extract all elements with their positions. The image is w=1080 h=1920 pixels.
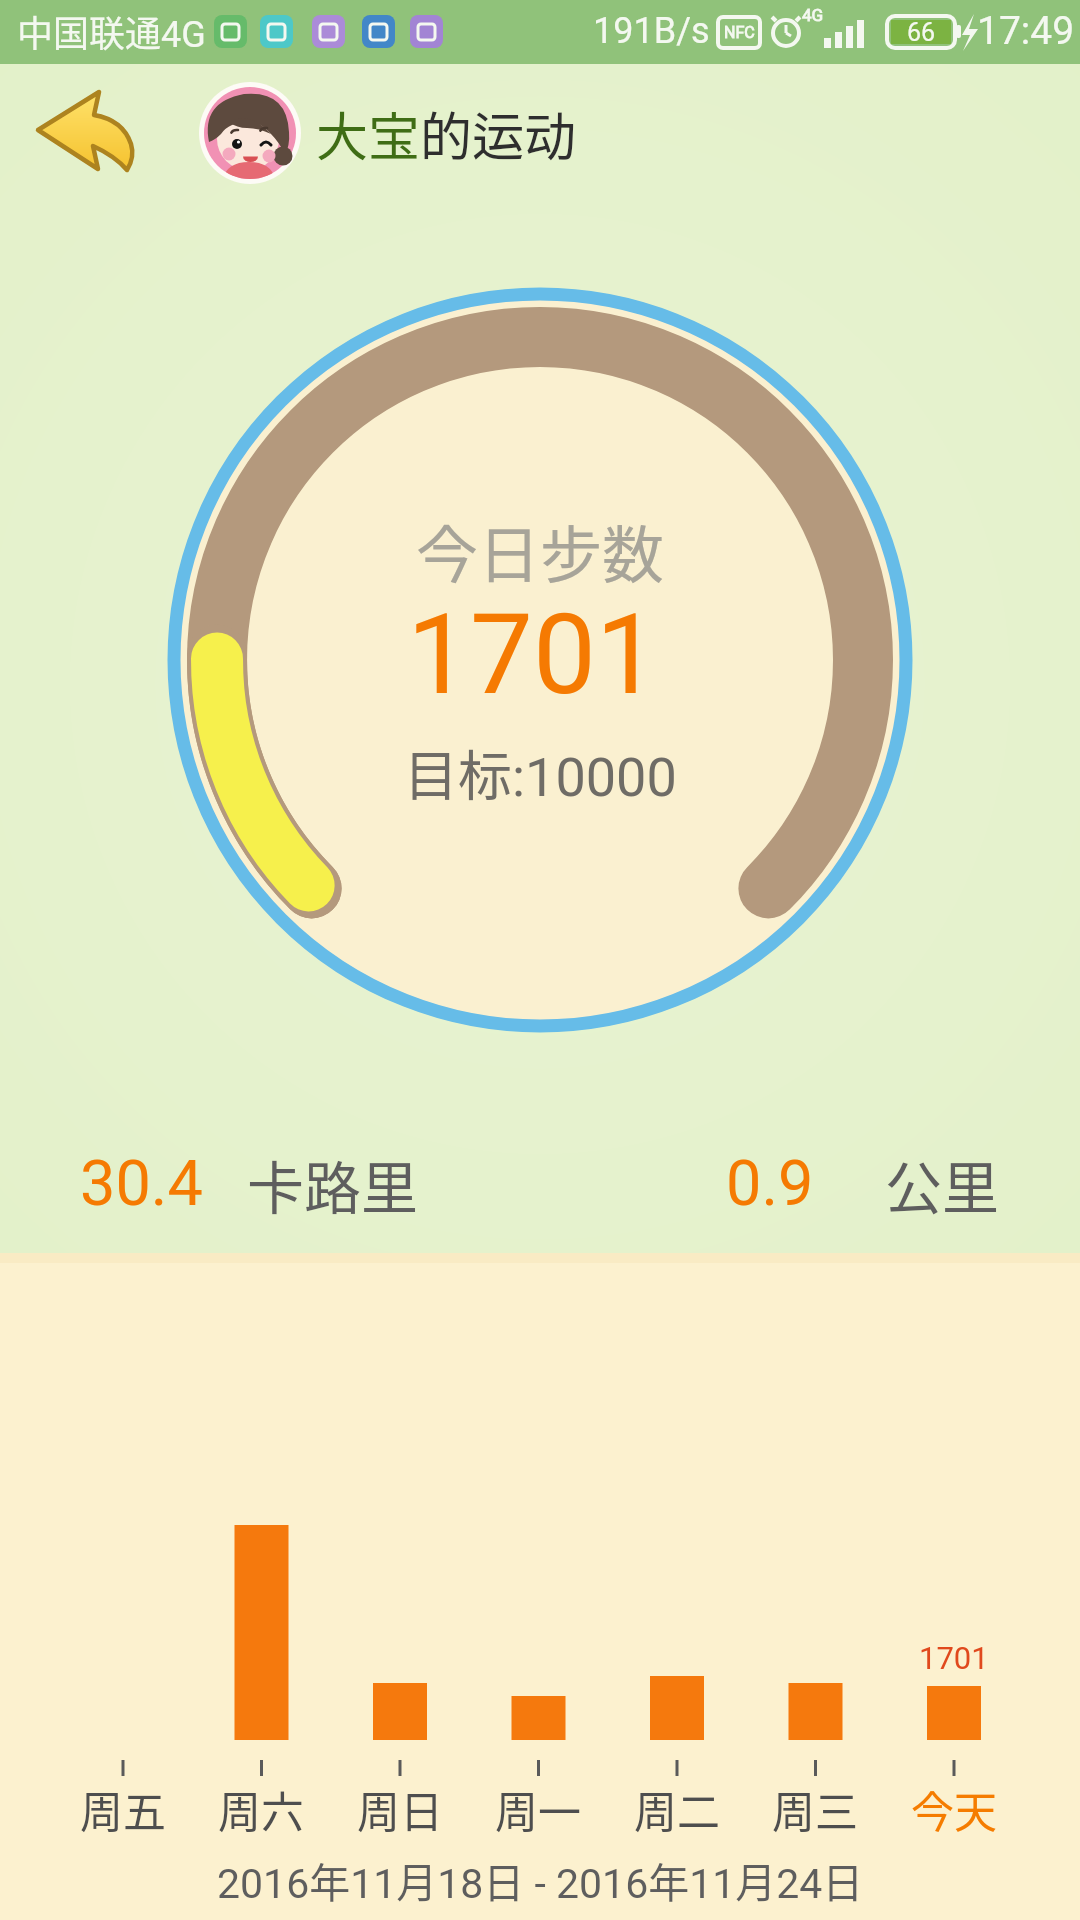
staticText: 今日步数 bbox=[416, 506, 665, 596]
staticText: 周日 bbox=[357, 1778, 443, 1840]
staticText: 公里 bbox=[885, 1143, 999, 1226]
staticText: 大宝的运动 bbox=[316, 96, 577, 171]
staticText: 周一 bbox=[495, 1778, 581, 1840]
staticText: 卡路里 bbox=[247, 1143, 418, 1226]
staticText: 1701 bbox=[407, 589, 659, 720]
staticText: 2016年11月18日 - 2016年11月24日 bbox=[217, 1850, 864, 1909]
staticText: 0.9 bbox=[726, 1147, 814, 1221]
staticText: 目标:10000 bbox=[404, 733, 677, 811]
staticText: 今天 bbox=[911, 1778, 997, 1840]
staticText: 66 bbox=[907, 18, 936, 47]
staticText: 周五 bbox=[80, 1778, 166, 1840]
staticText: 周二 bbox=[634, 1778, 720, 1840]
staticText: 30.4 bbox=[80, 1147, 203, 1221]
staticText: 17:49 bbox=[977, 8, 1075, 54]
staticText: 周三 bbox=[772, 1778, 858, 1840]
staticText: 4G bbox=[802, 5, 824, 25]
staticText: NFC bbox=[724, 23, 755, 42]
button[interactable]: 大宝的运动 bbox=[316, 83, 577, 183]
staticText: 1701 bbox=[919, 1640, 989, 1676]
staticText: 191B/s bbox=[593, 10, 710, 52]
staticText: 中国联通4G bbox=[17, 5, 206, 57]
staticText: 周六 bbox=[218, 1778, 304, 1840]
button[interactable] bbox=[25, 80, 145, 180]
button[interactable] bbox=[199, 82, 301, 184]
